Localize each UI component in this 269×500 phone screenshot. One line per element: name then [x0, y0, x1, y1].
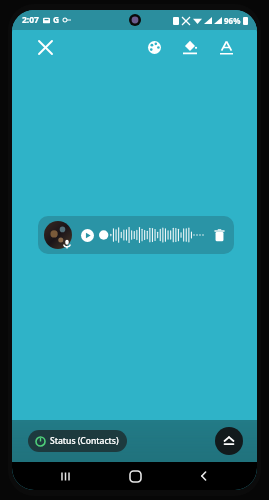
button[interactable]: Status (Contacts) — [28, 430, 127, 452]
staticText: G — [53, 14, 60, 26]
button[interactable]: Delete — [209, 225, 229, 245]
staticText: 96% — [224, 15, 241, 26]
button[interactable]: Play — [81, 229, 94, 242]
button[interactable]: Recents — [48, 462, 82, 490]
button[interactable]: Home — [118, 462, 152, 490]
button[interactable]: Send — [215, 427, 243, 455]
staticText: 2:07 — [22, 14, 39, 26]
button[interactable]: Draw — [177, 34, 203, 60]
button[interactable]: Add text — [213, 34, 239, 60]
button[interactable]: Stickers — [141, 34, 167, 60]
button[interactable]: Play — [38, 216, 234, 254]
staticText: Status (Contacts) — [50, 435, 119, 447]
button[interactable]: Close — [32, 34, 58, 60]
button[interactable]: Back — [187, 462, 221, 490]
